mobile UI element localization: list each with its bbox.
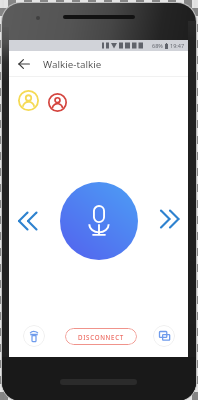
staticText: Walkie-talkie [43, 58, 102, 71]
button[interactable]: Participant [48, 93, 67, 112]
button[interactable]: Participant [18, 90, 39, 111]
button[interactable]: Chat [153, 325, 175, 347]
staticText: 19:47 [170, 42, 185, 49]
staticText: 68% [152, 42, 163, 49]
button[interactable]: DISCONNECT [65, 328, 137, 345]
staticText: DISCONNECT [78, 333, 124, 341]
button[interactable]: Next [158, 207, 181, 231]
button[interactable]: Previous [16, 209, 39, 233]
button[interactable]: Push to talk [60, 182, 138, 260]
button[interactable]: Speaker [23, 325, 45, 347]
button[interactable]: Back [15, 55, 33, 73]
